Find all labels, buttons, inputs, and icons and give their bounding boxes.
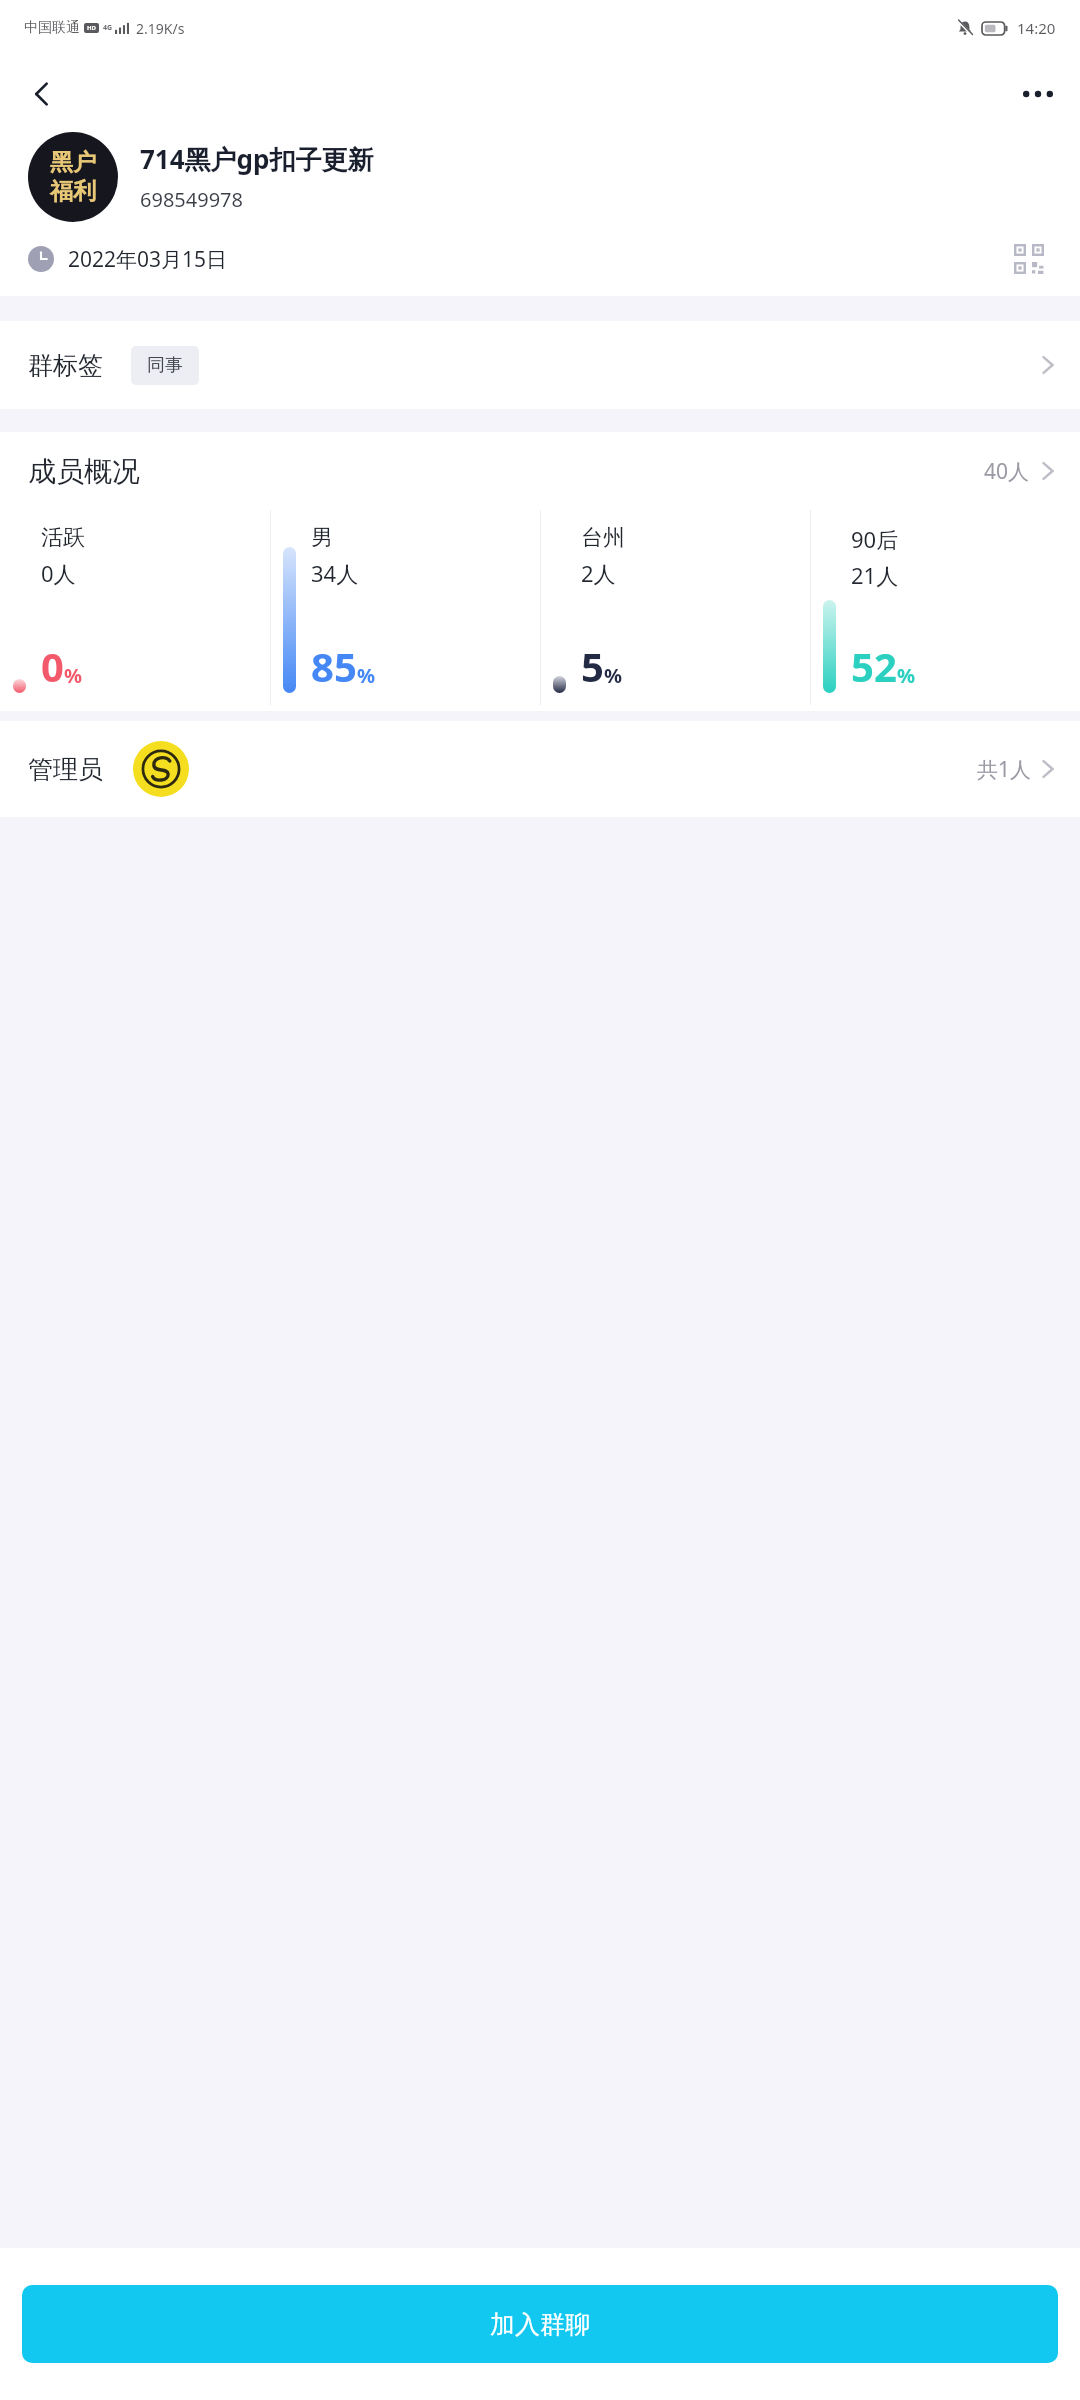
staticText: 福利: [50, 177, 96, 206]
button[interactable]: Group QR code: [1006, 236, 1052, 282]
staticText: %: [64, 662, 83, 689]
staticText: HD: [87, 24, 96, 32]
staticText: 5: [581, 639, 604, 693]
button[interactable]: 成员概况: [0, 432, 1080, 510]
staticText: 男: [311, 524, 333, 552]
staticText: 黑户: [50, 148, 96, 177]
button[interactable]: 管理员: [0, 721, 1080, 817]
staticText: 4G: [103, 23, 113, 33]
staticText: 0: [41, 639, 64, 693]
staticText: 2.19K/s: [136, 19, 185, 38]
button[interactable]: Group avatar: [28, 132, 118, 222]
staticText: 同事: [147, 354, 183, 377]
staticText: 14:20: [1017, 18, 1056, 38]
button[interactable]: 群标签: [0, 321, 1080, 409]
staticText: 698549978: [140, 186, 243, 213]
button[interactable]: 加入群聊: [22, 2285, 1058, 2363]
staticText: 加入群聊: [490, 2309, 590, 2340]
staticText: 2022年03月15日: [68, 245, 228, 274]
staticText: 0人: [41, 558, 76, 588]
staticText: 2人: [581, 558, 616, 588]
button[interactable]: Back: [14, 66, 70, 122]
staticText: 管理员: [28, 754, 103, 785]
staticText: 34人: [311, 558, 359, 588]
staticText: 活跃: [41, 524, 85, 552]
staticText: 成员概况: [28, 454, 140, 489]
staticText: 90后: [851, 524, 899, 554]
staticText: 台州: [581, 524, 625, 552]
staticText: 85: [311, 639, 357, 693]
button[interactable]: More options: [1010, 66, 1066, 122]
staticText: 40人: [984, 457, 1030, 486]
staticText: 52: [851, 639, 897, 693]
other: Silent mode: [957, 20, 973, 36]
staticText: 中国联通: [24, 19, 80, 37]
staticText: %: [357, 662, 376, 689]
staticText: %: [897, 662, 916, 689]
staticText: 714黑户gp扣子更新: [140, 141, 374, 177]
staticText: 共1人: [977, 755, 1032, 784]
staticText: 21人: [851, 560, 899, 590]
staticText: 群标签: [28, 350, 103, 381]
staticText: %: [604, 662, 623, 689]
